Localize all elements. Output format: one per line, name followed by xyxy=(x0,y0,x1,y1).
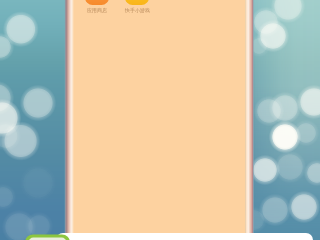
button[interactable]: 快手小游戏 xyxy=(119,0,155,13)
button[interactable]: 应用商店 xyxy=(79,0,115,13)
staticText: 快手小游戏 xyxy=(125,7,150,13)
staticText: 应用商店 xyxy=(87,7,107,13)
